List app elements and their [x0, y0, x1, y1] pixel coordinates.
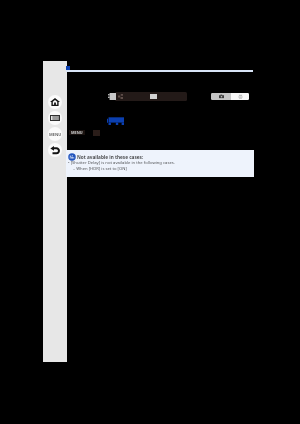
- button[interactable]: Home: [48, 95, 62, 109]
- staticText: MENU: [49, 132, 62, 137]
- staticText: • [Shutter Delay] is not available in th…: [68, 160, 175, 166]
- button[interactable]: Playback mode: [231, 93, 249, 100]
- button[interactable]: MENU: [69, 130, 85, 135]
- button[interactable]: Contents: [48, 111, 62, 125]
- staticText: – When [HDR] is set to [ON]: [73, 166, 127, 172]
- button[interactable]: Back: [48, 143, 62, 157]
- staticText: MENU: [71, 130, 83, 135]
- staticText: Not available in these cases:: [77, 154, 144, 160]
- button[interactable]: Menu: [48, 127, 62, 141]
- button[interactable]: Recording mode: [211, 93, 231, 100]
